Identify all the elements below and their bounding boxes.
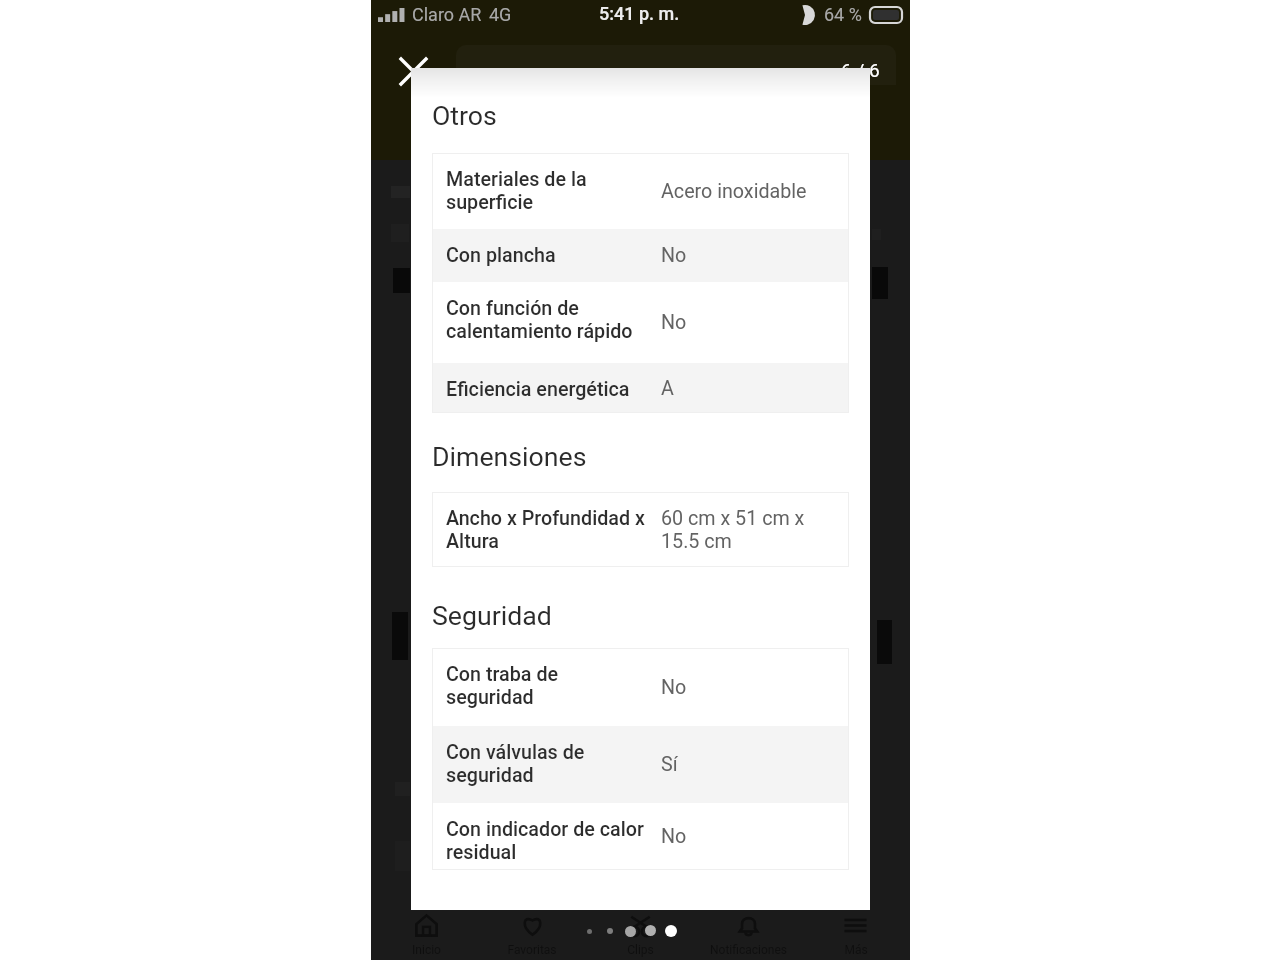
staticText: Con plancha: [446, 244, 556, 267]
button[interactable]: Clips: [598, 910, 682, 958]
staticText: Más: [844, 943, 868, 957]
staticText: Claro AR: [412, 4, 482, 25]
button[interactable]: Notificaciones: [706, 910, 790, 958]
button[interactable]: Con plancha: [432, 229, 849, 282]
button[interactable]: Eficiencia energética: [432, 363, 849, 413]
staticText: Dimensiones: [432, 441, 587, 472]
button[interactable]: Con traba de: [432, 648, 849, 726]
staticText: 5:41 p. m.: [599, 3, 680, 24]
staticText: 4G: [489, 4, 512, 25]
staticText: Inicio: [412, 943, 441, 957]
button[interactable]: Ancho x Profundidad x: [432, 492, 849, 567]
staticText: calentamiento rápido: [446, 320, 633, 343]
staticText: 64 %: [824, 4, 862, 25]
button[interactable]: Materiales de la: [432, 153, 849, 229]
button[interactable]: Con válvulas de: [432, 726, 849, 803]
staticText: Eficiencia energética: [446, 378, 630, 401]
staticText: 15.5 cm: [661, 530, 732, 553]
staticText: No: [661, 676, 687, 699]
staticText: seguridad: [446, 764, 534, 787]
staticText: seguridad: [446, 686, 534, 709]
staticText: No: [661, 244, 687, 267]
staticText: Clips: [627, 943, 654, 957]
staticText: Sí: [661, 753, 678, 776]
staticText: Con función de: [446, 297, 579, 320]
staticText: 6 / 6: [841, 59, 880, 81]
staticText: superficie: [446, 191, 534, 214]
button[interactable]: Con indicador de calor: [432, 803, 849, 870]
staticText: residual: [446, 841, 517, 864]
staticText: Otros: [432, 100, 497, 131]
staticText: 60 cm x 51 cm x: [661, 507, 805, 530]
button[interactable]: Con función de: [432, 282, 849, 363]
staticText: A: [661, 377, 674, 400]
staticText: Con traba de: [446, 663, 559, 686]
button[interactable]: Cerrar: [394, 52, 432, 90]
staticText: Acero inoxidable: [661, 180, 807, 203]
staticText: Con indicador de calor: [446, 818, 644, 841]
staticText: Altura: [446, 530, 499, 553]
staticText: Con válvulas de: [446, 741, 585, 764]
staticText: Ancho x Profundidad x: [446, 507, 645, 530]
button[interactable]: Inicio: [384, 910, 468, 958]
staticText: Seguridad: [432, 600, 552, 631]
staticText: Notificaciones: [710, 943, 787, 957]
staticText: No: [661, 825, 687, 848]
staticText: No: [661, 311, 687, 334]
staticText: Materiales de la: [446, 168, 587, 191]
staticText: Favoritas: [507, 943, 557, 957]
